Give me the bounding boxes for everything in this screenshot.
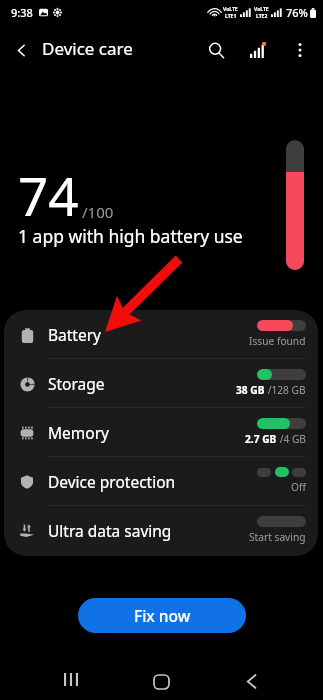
staticText: Issue found	[249, 334, 306, 348]
staticText: Memory	[48, 422, 109, 443]
staticText: VoLTE	[254, 6, 269, 13]
button[interactable]: Storage	[4, 359, 318, 408]
button[interactable]: Ultra data saving	[4, 506, 318, 555]
staticText: Ultra data saving	[48, 520, 172, 541]
button[interactable]: Device protection	[4, 457, 318, 506]
button[interactable]: Battery	[4, 310, 318, 359]
staticText: Device care	[42, 37, 133, 60]
staticText: Start saving	[249, 530, 306, 544]
button[interactable]: Statistics	[237, 29, 279, 71]
staticText: /100	[82, 202, 114, 222]
button[interactable]: More options	[279, 29, 321, 71]
staticText: 1 app with high battery use	[18, 224, 243, 248]
button[interactable]: Back	[227, 661, 276, 700]
staticText: 9:38	[11, 5, 33, 20]
staticText: Off	[291, 480, 306, 494]
staticText: 2.7 GB	[245, 432, 277, 446]
button[interactable]: Navigate up	[0, 29, 42, 71]
button[interactable]: Home	[137, 661, 186, 700]
button[interactable]: Recents	[46, 659, 95, 700]
button[interactable]: Search	[195, 29, 237, 71]
staticText: LTE1	[225, 13, 237, 20]
staticText: Battery	[48, 324, 102, 345]
staticText: 74	[18, 159, 79, 231]
staticText: 76%	[286, 5, 308, 20]
staticText: Fix now	[134, 605, 191, 626]
button[interactable]: Memory	[4, 408, 318, 457]
staticText: /4 GB	[277, 432, 306, 446]
button[interactable]: Fix now	[78, 598, 246, 633]
staticText: VoLTE	[223, 6, 238, 13]
staticText: Device protection	[48, 471, 176, 492]
staticText: 38 GB	[236, 383, 265, 397]
staticText: LTE2	[256, 13, 268, 20]
staticText: /128 GB	[265, 383, 306, 397]
staticText: Storage	[48, 373, 105, 394]
